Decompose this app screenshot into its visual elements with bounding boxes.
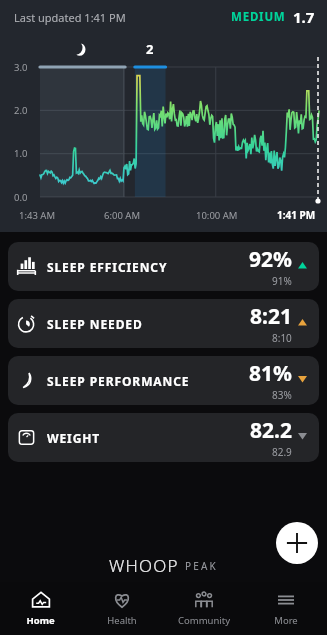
staticText: 3.0 <box>14 61 28 74</box>
staticText: 2.0 <box>14 104 28 117</box>
staticText: 81% <box>249 359 292 388</box>
staticText: 82.2 <box>250 416 292 445</box>
staticText: Community <box>178 614 230 627</box>
button[interactable]: Health <box>81 582 163 635</box>
button[interactable]: Home <box>0 582 81 635</box>
staticText: 8:10 <box>272 331 292 345</box>
staticText: 1.0 <box>14 147 28 160</box>
staticText: 82.9 <box>272 445 292 459</box>
staticText: 0.0 <box>14 191 28 204</box>
staticText: 2 <box>146 40 154 58</box>
staticText: SLEEP EFFICIENCY <box>47 259 168 275</box>
staticText: MEDIUM <box>231 9 286 25</box>
staticText: 8:21 <box>250 302 292 331</box>
button[interactable]: SLEEP EFFICIENCY <box>8 242 319 291</box>
staticText: 83% <box>272 388 292 402</box>
staticText: 92% <box>249 245 292 274</box>
staticText: SLEEP NEEDED <box>47 316 143 332</box>
staticText: WEIGHT <box>47 430 101 446</box>
staticText: 91% <box>272 274 292 288</box>
staticText: Health <box>107 614 137 627</box>
button[interactable]: SLEEP NEEDED <box>8 299 319 348</box>
staticText: PEAK <box>185 559 218 573</box>
button[interactable]: Community <box>163 582 245 635</box>
staticText: 1.7 <box>293 7 315 27</box>
staticText: 6:00 AM <box>104 209 141 222</box>
staticText: 1:41 PM <box>277 208 316 222</box>
staticText: SLEEP PERFORMANCE <box>47 373 190 389</box>
staticText: 1:43 AM <box>19 209 56 222</box>
staticText: More <box>274 614 298 627</box>
staticText: Last updated 1:41 PM <box>14 10 126 25</box>
staticText: WHOOP <box>109 554 179 577</box>
button[interactable]: Add <box>276 522 318 564</box>
staticText: 10:00 AM <box>196 209 238 222</box>
button[interactable]: SLEEP PERFORMANCE <box>8 356 319 405</box>
staticText: Home <box>26 614 55 627</box>
button[interactable]: More <box>245 582 327 635</box>
button[interactable]: WEIGHT <box>8 413 319 462</box>
